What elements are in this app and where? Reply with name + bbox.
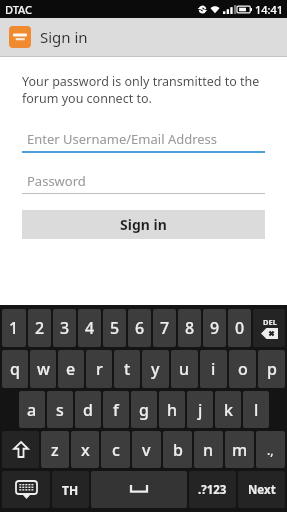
button[interactable]: b — [163, 431, 192, 468]
staticText: DEL — [263, 317, 277, 327]
staticText: j — [198, 399, 203, 421]
button[interactable]: q — [2, 350, 28, 388]
button[interactable]: Shift — [2, 431, 39, 468]
button[interactable]: v — [132, 431, 161, 468]
staticText: c — [112, 439, 120, 461]
staticText: 14:41 — [255, 2, 284, 17]
button[interactable]: 5 — [103, 309, 126, 347]
button[interactable]: Delete — [253, 309, 285, 347]
button[interactable]: n — [194, 431, 223, 468]
staticText: Enter Username/Email Address — [27, 130, 218, 148]
staticText: q — [10, 358, 20, 380]
button[interactable]: 0 — [228, 309, 251, 347]
button[interactable]: s — [47, 391, 73, 428]
button[interactable]: t — [114, 350, 140, 388]
button[interactable]: 9 — [203, 309, 226, 347]
staticText: u — [179, 358, 190, 380]
staticText: g — [139, 399, 149, 421]
button[interactable]: 6 — [128, 309, 151, 347]
button[interactable]: TH — [52, 471, 89, 508]
button[interactable]: Next — [238, 471, 285, 508]
button[interactable]: Enter Username/Email Address — [22, 127, 265, 153]
staticText: m — [232, 439, 248, 461]
button[interactable]: ., — [256, 431, 285, 468]
staticText: 5 — [110, 317, 120, 339]
button[interactable]: .?123 — [189, 471, 236, 508]
staticText: Your password is only transmitted to the… — [22, 73, 265, 107]
button[interactable]: Space — [91, 471, 187, 508]
staticText: f — [113, 399, 119, 421]
staticText: z — [51, 439, 59, 461]
staticText: 1 — [9, 317, 19, 339]
staticText: v — [142, 439, 151, 461]
button[interactable]: z — [41, 431, 69, 468]
button[interactable]: 3 — [53, 309, 76, 347]
staticText: 4 — [85, 317, 95, 339]
staticText: Password — [27, 172, 86, 190]
staticText: .?123 — [198, 482, 227, 498]
button[interactable]: k — [215, 391, 241, 428]
button[interactable]: 1 — [2, 309, 26, 347]
button[interactable]: o — [229, 350, 256, 388]
staticText: w — [37, 358, 50, 380]
button[interactable]: m — [225, 431, 254, 468]
staticText: e — [66, 358, 76, 380]
staticText: TH — [62, 482, 79, 498]
staticText: t — [124, 358, 131, 380]
staticText: l — [254, 399, 259, 421]
button[interactable]: Sign in — [0, 18, 287, 56]
button[interactable]: c — [101, 431, 130, 468]
button[interactable]: 4 — [78, 309, 101, 347]
button[interactable]: Password — [22, 169, 265, 194]
button[interactable]: 8 — [178, 309, 201, 347]
button[interactable]: p — [258, 350, 285, 388]
button[interactable]: f — [103, 391, 129, 428]
staticText: Next — [248, 482, 276, 498]
staticText: 9 — [210, 317, 220, 339]
button[interactable]: Sign in — [22, 210, 265, 239]
staticText: k — [224, 399, 233, 421]
staticText: d — [83, 399, 93, 421]
button[interactable]: i — [200, 350, 227, 388]
staticText: p — [267, 358, 277, 380]
staticText: ., — [267, 442, 274, 458]
button[interactable]: 7 — [153, 309, 176, 347]
staticText: b — [173, 439, 183, 461]
button[interactable]: u — [171, 350, 198, 388]
staticText: DTAC — [5, 2, 33, 17]
staticText: 2 — [35, 317, 45, 339]
button[interactable]: e — [58, 350, 84, 388]
button[interactable]: g — [131, 391, 157, 428]
staticText: 7 — [160, 317, 170, 339]
staticText: 6 — [135, 317, 145, 339]
staticText: a — [27, 399, 37, 421]
staticText: h — [167, 399, 178, 421]
button[interactable]: d — [75, 391, 101, 428]
button[interactable]: h — [159, 391, 185, 428]
button[interactable]: Hide keyboard — [2, 471, 50, 508]
button[interactable]: l — [243, 391, 269, 428]
staticText: 3 — [60, 317, 70, 339]
button[interactable]: r — [86, 350, 112, 388]
button[interactable]: 2 — [28, 309, 51, 347]
button[interactable]: y — [142, 350, 169, 388]
staticText: 8 — [185, 317, 195, 339]
button[interactable]: j — [187, 391, 213, 428]
staticText: x — [81, 439, 90, 461]
staticText: 0 — [235, 317, 245, 339]
staticText: s — [56, 399, 64, 421]
button[interactable]: x — [71, 431, 99, 468]
staticText: Sign in — [40, 27, 88, 47]
staticText: n — [203, 439, 214, 461]
staticText: o — [238, 358, 248, 380]
button[interactable]: a — [19, 391, 45, 428]
staticText: i — [211, 358, 216, 380]
staticText: r — [96, 358, 103, 380]
button[interactable]: w — [30, 350, 56, 388]
staticText: y — [151, 358, 160, 380]
staticText: Sign in — [120, 215, 167, 234]
